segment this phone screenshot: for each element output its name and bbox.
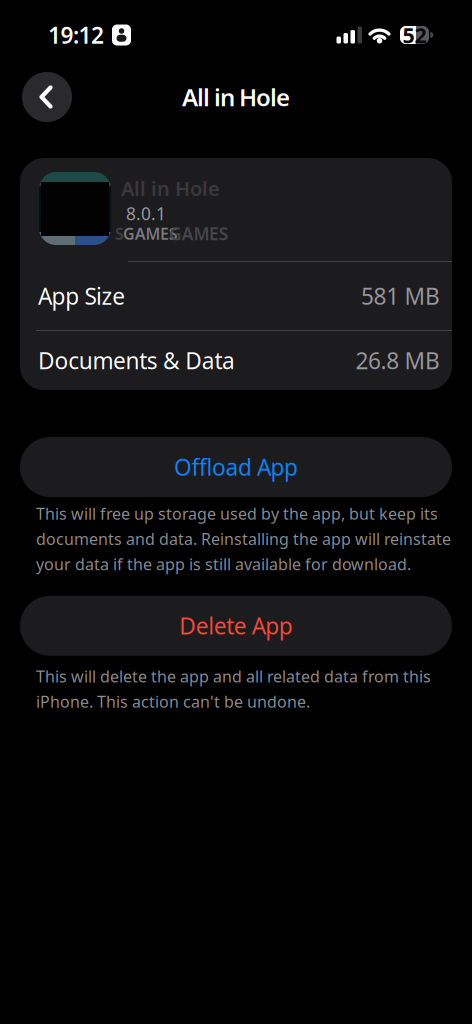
staticText: App Size — [38, 281, 125, 311]
staticText: Delete App — [179, 611, 293, 641]
staticText: 26.8 MB — [355, 345, 440, 375]
staticText: iPhone. This action can't be undone. — [36, 691, 310, 712]
staticText: documents and data. Reinstalling the app… — [36, 528, 451, 549]
staticText: This will delete the app and all related… — [36, 666, 431, 687]
staticText: All in Hole — [182, 81, 290, 113]
staticText: GAMES — [123, 223, 178, 244]
staticText: S — [115, 223, 124, 244]
button[interactable]: Back — [22, 72, 72, 122]
staticText: Offload App — [174, 452, 298, 482]
staticText: 8.0.1 — [126, 202, 166, 225]
staticText: All in Hole — [121, 175, 220, 202]
button[interactable]: Offload App — [20, 437, 452, 497]
button[interactable]: Delete App — [20, 596, 452, 656]
staticText: 19:12 — [48, 20, 104, 50]
staticText: 581 MB — [361, 281, 440, 311]
staticText: GAMES — [169, 222, 229, 245]
staticText: Documents & Data — [38, 345, 235, 375]
staticText: This will free up storage used by the ap… — [36, 503, 438, 524]
staticText: your data if the app is still available … — [36, 553, 411, 575]
staticText: 52 — [402, 21, 426, 49]
